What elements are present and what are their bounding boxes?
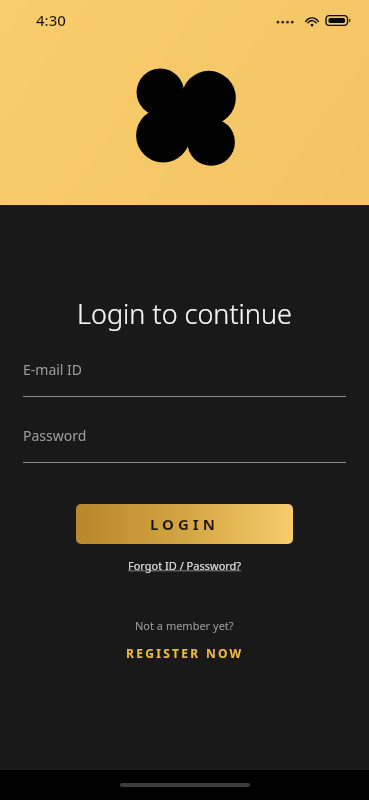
- staticText: REGISTER NOW: [126, 645, 244, 661]
- staticText: Login to continue: [77, 295, 292, 332]
- button[interactable]: REGISTER NOW: [116, 642, 254, 664]
- staticText: E-mail ID: [23, 360, 83, 379]
- staticText: Password: [23, 426, 87, 445]
- button[interactable]: Forgot ID / Password?: [122, 555, 248, 576]
- staticText: Not a member yet?: [135, 618, 234, 633]
- staticText: LOGIN: [150, 514, 219, 534]
- staticText: Forgot ID / Password?: [128, 558, 242, 573]
- staticText: 4:30: [36, 10, 66, 30]
- button[interactable]: LOGIN: [76, 504, 293, 544]
